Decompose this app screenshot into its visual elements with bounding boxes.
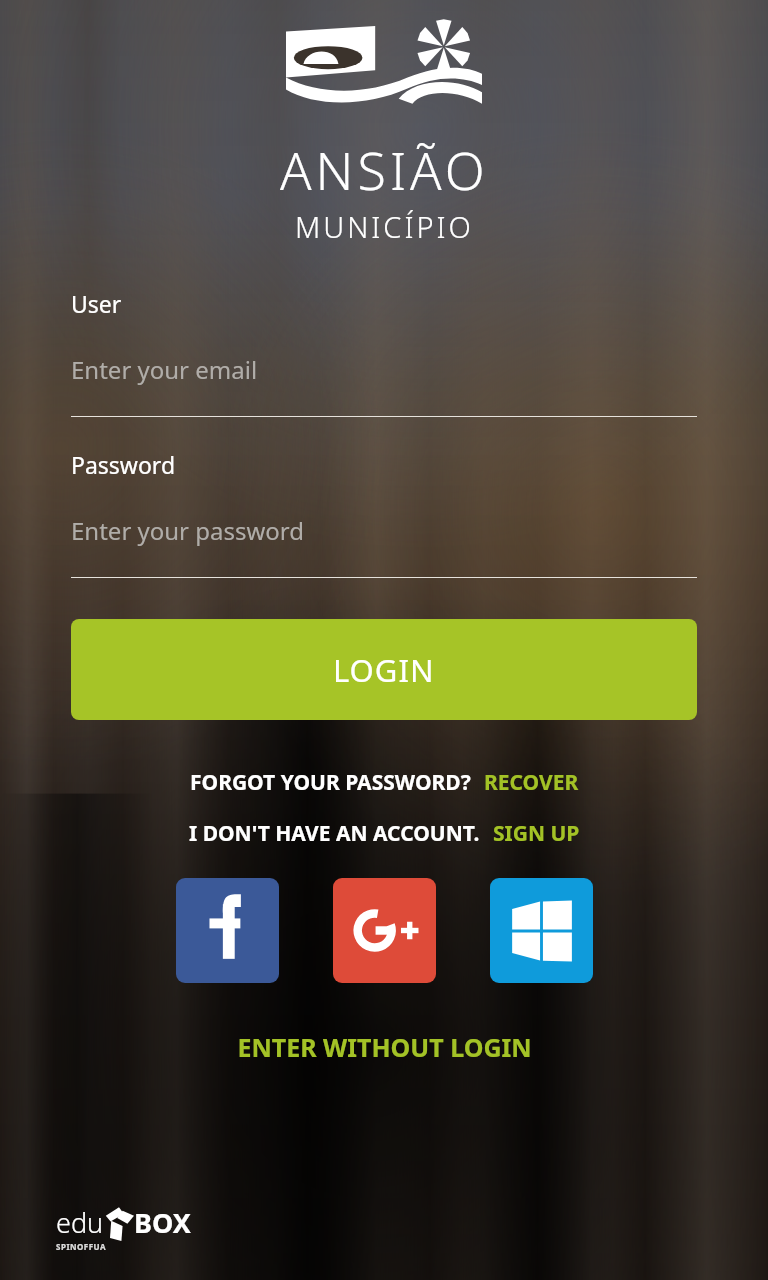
button[interactable]: SIGN UP (493, 819, 580, 848)
staticText: Password (71, 449, 176, 480)
staticText: RECOVER (484, 768, 579, 797)
button[interactable]: Enter your email (71, 353, 697, 386)
staticText: User (71, 288, 122, 319)
staticText: LOGIN (333, 649, 435, 691)
staticText: Enter your email (71, 353, 258, 386)
staticText: SIGN UP (493, 819, 580, 848)
button[interactable]: Sign in with Facebook (176, 878, 279, 983)
button[interactable]: RECOVER (484, 768, 579, 797)
staticText: ENTER WITHOUT LOGIN (237, 1030, 532, 1064)
other: eduBOX (56, 1204, 191, 1252)
staticText: edu (56, 1204, 104, 1241)
staticText: I DON'T HAVE AN ACCOUNT. (189, 819, 480, 848)
staticText: FORGOT YOUR PASSWORD? (190, 768, 471, 797)
staticText: Enter your password (71, 514, 305, 547)
button[interactable]: LOGIN (71, 619, 697, 720)
button[interactable]: Sign in with Microsoft (490, 878, 593, 983)
staticText: MUNICÍPIO (295, 207, 474, 246)
staticText: BOX (134, 1204, 191, 1241)
staticText: ANSIÃO (280, 134, 489, 205)
button[interactable]: Enter your password (71, 514, 697, 547)
staticText: SPINOFFUA (56, 1241, 107, 1252)
button[interactable]: Sign in with Google Plus (333, 878, 436, 983)
button[interactable]: ENTER WITHOUT LOGIN (237, 1030, 532, 1064)
